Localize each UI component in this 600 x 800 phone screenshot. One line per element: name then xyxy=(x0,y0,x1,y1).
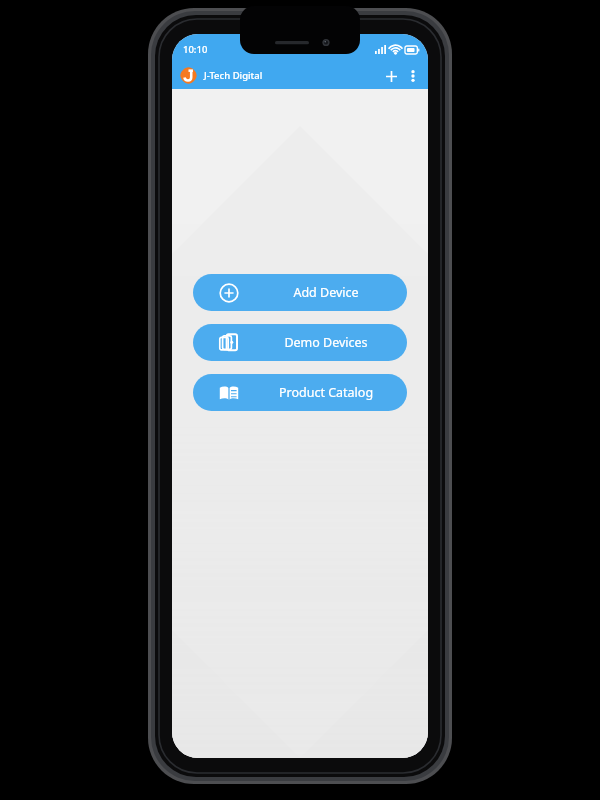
staticText: Add Device xyxy=(251,284,401,301)
staticText: Product Catalog xyxy=(251,384,401,401)
button[interactable]: Add Device xyxy=(193,274,407,311)
button[interactable]: J-Tech Digital logo xyxy=(180,67,197,84)
button[interactable]: Add xyxy=(380,65,402,87)
button[interactable]: Product Catalog xyxy=(193,374,407,411)
staticText: Demo Devices xyxy=(251,334,401,351)
button[interactable]: More options xyxy=(402,65,424,87)
button[interactable]: Demo Devices xyxy=(193,324,407,361)
staticText: 10:10 xyxy=(183,43,208,56)
staticText: J-Tech Digital xyxy=(204,69,263,82)
